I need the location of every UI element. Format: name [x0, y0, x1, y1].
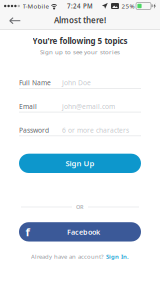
button[interactable]: Facebook	[19, 222, 141, 241]
staticText: Sign Up	[65, 158, 94, 168]
staticText: Already have an account?	[31, 253, 104, 260]
staticText: john@email.com	[62, 102, 115, 111]
staticText: Full Name	[19, 78, 51, 87]
staticText: T-Mobile	[22, 2, 48, 10]
staticText: Facebook	[67, 227, 100, 237]
staticText: John Doe	[62, 78, 91, 87]
button[interactable]: Back	[2, 12, 28, 29]
staticText: Password	[19, 126, 49, 135]
staticText: 25%	[121, 2, 134, 10]
staticText: 6 or more characters	[62, 126, 129, 135]
staticText: f	[25, 224, 29, 239]
staticText: You're following 5 topics	[32, 36, 127, 46]
staticText: Email	[19, 102, 37, 111]
staticText: Almost there!	[54, 15, 106, 25]
staticText: Sign up to see your stories	[40, 48, 120, 56]
staticText: OR	[76, 203, 84, 211]
staticText: 7:24 PM	[67, 2, 93, 10]
button[interactable]: Sign Up	[19, 154, 141, 173]
button[interactable]: Already have an account?	[0, 251, 160, 261]
staticText: Sign In.	[106, 253, 129, 260]
